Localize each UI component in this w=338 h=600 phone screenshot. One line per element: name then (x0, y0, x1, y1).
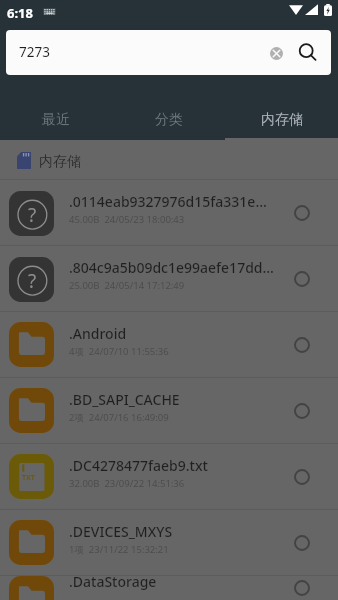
staticText: .DataStorage (69, 572, 157, 591)
staticText: 内存储 (261, 111, 303, 129)
button[interactable]: Select item (275, 576, 338, 600)
staticText: .DC4278477faeb9.txt (69, 456, 208, 475)
staticText: 6:18 (7, 4, 33, 22)
staticText: 最近 (42, 111, 70, 129)
button[interactable]: Select item (275, 312, 338, 377)
button[interactable]: Select item (275, 246, 338, 311)
button[interactable]: .Android (0, 312, 338, 378)
staticText: 分类 (155, 111, 183, 129)
staticText: 32.00B 23/09/22 14:51:36 (69, 477, 185, 490)
button[interactable]: .BD_SAPI_CACHE (0, 378, 338, 444)
button[interactable]: .DataStorage (0, 576, 338, 600)
staticText: 内存储 (39, 153, 81, 171)
button[interactable]: 分类 (112, 100, 225, 140)
button[interactable]: 最近 (0, 100, 112, 140)
staticText: 4项 24/07/10 11:55:36 (69, 345, 169, 358)
button[interactable]: ? (0, 180, 338, 246)
button[interactable]: Search (287, 31, 331, 75)
staticText: ? (28, 202, 37, 228)
staticText: 1项 23/11/22 15:32:21 (69, 543, 169, 556)
staticText: TXT (22, 473, 35, 483)
button[interactable]: 内存储 (225, 100, 338, 140)
button[interactable]: Select item (275, 444, 338, 509)
staticText: 7273 (19, 43, 249, 61)
staticText: 2项 24/07/16 16:49:09 (69, 411, 169, 424)
staticText: 45.00B 24/05/23 18:00:43 (69, 213, 185, 226)
button[interactable]: Select item (275, 510, 338, 575)
staticText: .Android (69, 324, 127, 343)
staticText: ? (28, 268, 37, 294)
button[interactable]: TXT (0, 444, 338, 510)
staticText: .BD_SAPI_CACHE (69, 390, 180, 409)
button[interactable]: ? (0, 246, 338, 312)
button[interactable]: Clear search (249, 34, 287, 72)
staticText: .DEVICES_MXYS (69, 522, 173, 541)
button[interactable]: 内存储 (0, 140, 338, 179)
button[interactable]: 7273 (6, 30, 331, 75)
staticText: 25.00B 24/05/14 17:12:49 (69, 279, 185, 292)
button[interactable]: Select item (275, 180, 338, 245)
staticText: .804c9a5b09dc1e99aefe17dd… (69, 258, 274, 277)
button[interactable]: .DEVICES_MXYS (0, 510, 338, 576)
button[interactable]: Select item (275, 378, 338, 443)
staticText: .0114eab9327976d15fa331e… (69, 192, 267, 211)
